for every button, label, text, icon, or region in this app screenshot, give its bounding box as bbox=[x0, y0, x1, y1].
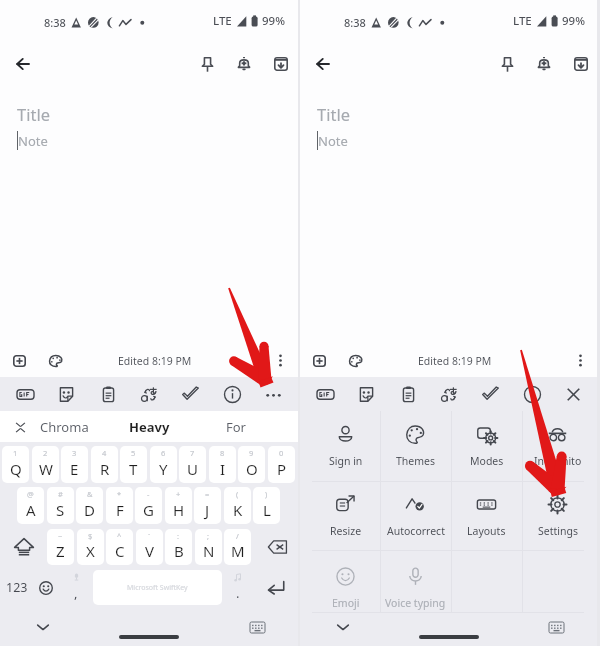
button[interactable]: @ bbox=[17, 487, 44, 524]
button[interactable]: Hide keyboard bbox=[30, 614, 56, 640]
button[interactable]: Change colour bbox=[40, 344, 71, 377]
button[interactable]: Add bbox=[4, 344, 35, 377]
button[interactable]: Layouts bbox=[451, 481, 522, 550]
staticText: 99% bbox=[562, 13, 585, 29]
button[interactable]: 5 bbox=[120, 446, 147, 483]
button[interactable]: 6 bbox=[150, 446, 177, 483]
button[interactable]: Collapse suggestions bbox=[6, 413, 34, 441]
staticText: ^ bbox=[117, 531, 122, 541]
staticText: For bbox=[226, 418, 246, 436]
staticText: 3 bbox=[72, 448, 77, 458]
staticText: 4 bbox=[102, 448, 107, 458]
button[interactable]: Reminder bbox=[226, 44, 261, 84]
button[interactable]: 4 bbox=[91, 446, 118, 483]
button[interactable]: Switch keyboard bbox=[244, 614, 270, 640]
staticText: ) bbox=[265, 489, 268, 499]
button[interactable]: Tasks bbox=[174, 377, 206, 411]
button[interactable]: Info bbox=[516, 377, 548, 411]
button[interactable]: More bbox=[257, 377, 289, 411]
staticText: Modes bbox=[470, 454, 504, 468]
staticText: ` bbox=[148, 531, 151, 541]
button[interactable]: 3 bbox=[61, 446, 88, 483]
button[interactable]: Info bbox=[216, 377, 248, 411]
staticText: Edited 8:19 PM bbox=[418, 354, 492, 368]
button[interactable]: Themes bbox=[380, 411, 451, 481]
button[interactable]: Stickers bbox=[350, 377, 382, 411]
button[interactable]: Settings bbox=[522, 481, 593, 550]
button[interactable]: Resize bbox=[310, 481, 381, 550]
button[interactable]: Heavy bbox=[107, 411, 191, 442]
button[interactable]: 8 bbox=[209, 446, 236, 483]
button[interactable]: Back bbox=[304, 44, 341, 84]
button[interactable]: * bbox=[106, 487, 133, 524]
button[interactable]: Modes bbox=[451, 411, 522, 481]
button[interactable]: : bbox=[165, 529, 192, 565]
button[interactable]: 123 bbox=[0, 570, 34, 605]
staticText: Incognito bbox=[534, 454, 582, 468]
button[interactable]: Clipboard bbox=[392, 377, 424, 411]
button[interactable]: Chroma bbox=[22, 411, 106, 442]
button[interactable]: Stickers bbox=[50, 377, 82, 411]
staticText: C bbox=[115, 541, 125, 561]
staticText: , bbox=[74, 584, 78, 602]
button[interactable]: ) bbox=[253, 487, 280, 524]
button[interactable]: ~ bbox=[47, 529, 74, 565]
button[interactable]: Enter bbox=[256, 570, 296, 605]
button[interactable]: Back bbox=[4, 44, 41, 84]
button[interactable]: . bbox=[226, 570, 250, 605]
staticText: Chroma bbox=[40, 418, 89, 436]
button[interactable]: ` bbox=[136, 529, 163, 565]
button[interactable]: Voice typing bbox=[380, 550, 451, 612]
button[interactable]: - bbox=[135, 487, 162, 524]
staticText: + bbox=[176, 489, 181, 499]
staticText: ; bbox=[207, 531, 210, 541]
staticText: U bbox=[187, 459, 198, 479]
staticText: Sign in bbox=[329, 454, 363, 468]
button[interactable]: Emoji bbox=[310, 550, 381, 612]
button[interactable]: + bbox=[165, 487, 192, 524]
button[interactable]: Archive bbox=[263, 44, 298, 84]
button[interactable]: More options bbox=[265, 344, 296, 377]
button[interactable]: ^ bbox=[106, 529, 133, 565]
button[interactable]: 2 bbox=[32, 446, 59, 483]
button[interactable]: Translate bbox=[133, 377, 165, 411]
button[interactable]: Pin bbox=[490, 44, 525, 84]
button[interactable]: Space bbox=[93, 570, 222, 605]
staticText: S bbox=[56, 500, 65, 520]
button[interactable]: Shift bbox=[2, 529, 46, 565]
button[interactable]: 7 bbox=[179, 446, 206, 483]
button[interactable]: 0 bbox=[268, 446, 295, 483]
button[interactable]: Clipboard bbox=[92, 377, 124, 411]
button[interactable]: For bbox=[194, 411, 278, 442]
button[interactable]: = bbox=[194, 487, 221, 524]
button[interactable]: # bbox=[47, 487, 74, 524]
button[interactable]: More options bbox=[565, 344, 596, 377]
staticText: 99% bbox=[262, 13, 285, 29]
button[interactable]: GIF bbox=[9, 377, 41, 411]
button[interactable]: , bbox=[64, 570, 88, 605]
button[interactable]: Reminder bbox=[526, 44, 561, 84]
button[interactable]: 1 bbox=[2, 446, 29, 483]
button[interactable]: Add bbox=[304, 344, 335, 377]
button[interactable]: Backspace bbox=[256, 529, 298, 565]
button[interactable]: ( bbox=[224, 487, 251, 524]
button[interactable]: Pin bbox=[190, 44, 225, 84]
button[interactable]: Tasks bbox=[474, 377, 506, 411]
button[interactable]: $ bbox=[77, 529, 104, 565]
button[interactable]: Close bbox=[557, 377, 589, 411]
button[interactable]: 9 bbox=[238, 446, 265, 483]
button[interactable]: Emoji bbox=[30, 570, 61, 605]
button[interactable]: Change colour bbox=[340, 344, 371, 377]
button[interactable]: Archive bbox=[563, 44, 598, 84]
button[interactable]: Autocorrect bbox=[380, 481, 451, 550]
button[interactable]: Hide keyboard bbox=[330, 614, 356, 640]
button[interactable]: Sign in bbox=[310, 411, 381, 481]
button[interactable]: Switch keyboard bbox=[543, 614, 569, 640]
button[interactable]: Incognito bbox=[522, 411, 593, 481]
button[interactable]: GIF bbox=[309, 377, 341, 411]
button[interactable]: Translate bbox=[433, 377, 465, 411]
staticText: O bbox=[246, 459, 258, 479]
button[interactable]: ; bbox=[195, 529, 222, 565]
button[interactable]: & bbox=[76, 487, 103, 524]
button[interactable]: / bbox=[224, 529, 251, 565]
